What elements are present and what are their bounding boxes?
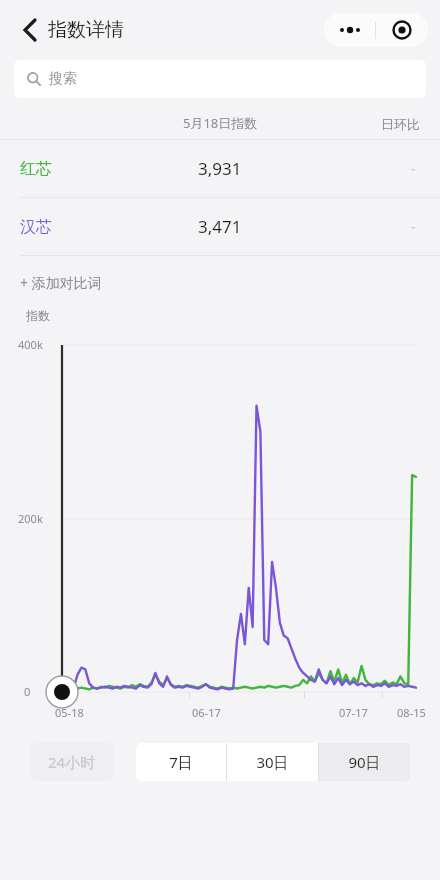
staticText: 7日 bbox=[169, 752, 193, 772]
staticText: 06-17 bbox=[192, 705, 221, 720]
staticText: 指数详情 bbox=[48, 18, 124, 42]
staticText: 汉芯 bbox=[20, 217, 52, 237]
staticText: 日环比 bbox=[381, 116, 420, 132]
staticText: 指数 bbox=[26, 308, 50, 323]
staticText: 3,931 bbox=[198, 157, 242, 180]
button[interactable]: 30日 bbox=[227, 743, 318, 781]
staticText: 3,471 bbox=[198, 215, 242, 238]
staticText: 90日 bbox=[348, 752, 381, 772]
button[interactable]: Back bbox=[10, 10, 50, 50]
staticText: 搜索 bbox=[49, 70, 77, 88]
staticText: - bbox=[411, 217, 416, 236]
button[interactable]: 搜索 bbox=[14, 60, 426, 98]
staticText: 0 bbox=[24, 684, 31, 699]
staticText: 5月18日指数 bbox=[183, 114, 258, 132]
staticText: 200k bbox=[18, 511, 43, 526]
button[interactable]: More bbox=[324, 13, 375, 47]
staticText: 08-15 bbox=[397, 705, 426, 720]
button[interactable]: 90日 bbox=[319, 743, 410, 781]
button[interactable]: 红芯 bbox=[0, 140, 440, 197]
staticText: 24小时 bbox=[48, 752, 96, 772]
staticText: 05-18 bbox=[55, 705, 84, 720]
button[interactable]: 24小时 bbox=[30, 743, 114, 781]
staticText: + 添加对比词 bbox=[20, 273, 102, 292]
button[interactable]: 汉芯 bbox=[0, 198, 440, 255]
button[interactable]: + 添加对比词 bbox=[20, 256, 440, 308]
staticText: 07-17 bbox=[339, 705, 368, 720]
staticText: - bbox=[411, 159, 416, 178]
staticText: 红芯 bbox=[20, 159, 52, 179]
staticText: 30日 bbox=[256, 752, 289, 772]
button[interactable]: 7日 bbox=[136, 743, 226, 781]
button[interactable]: Close bbox=[376, 13, 428, 47]
staticText: 400k bbox=[18, 337, 43, 352]
